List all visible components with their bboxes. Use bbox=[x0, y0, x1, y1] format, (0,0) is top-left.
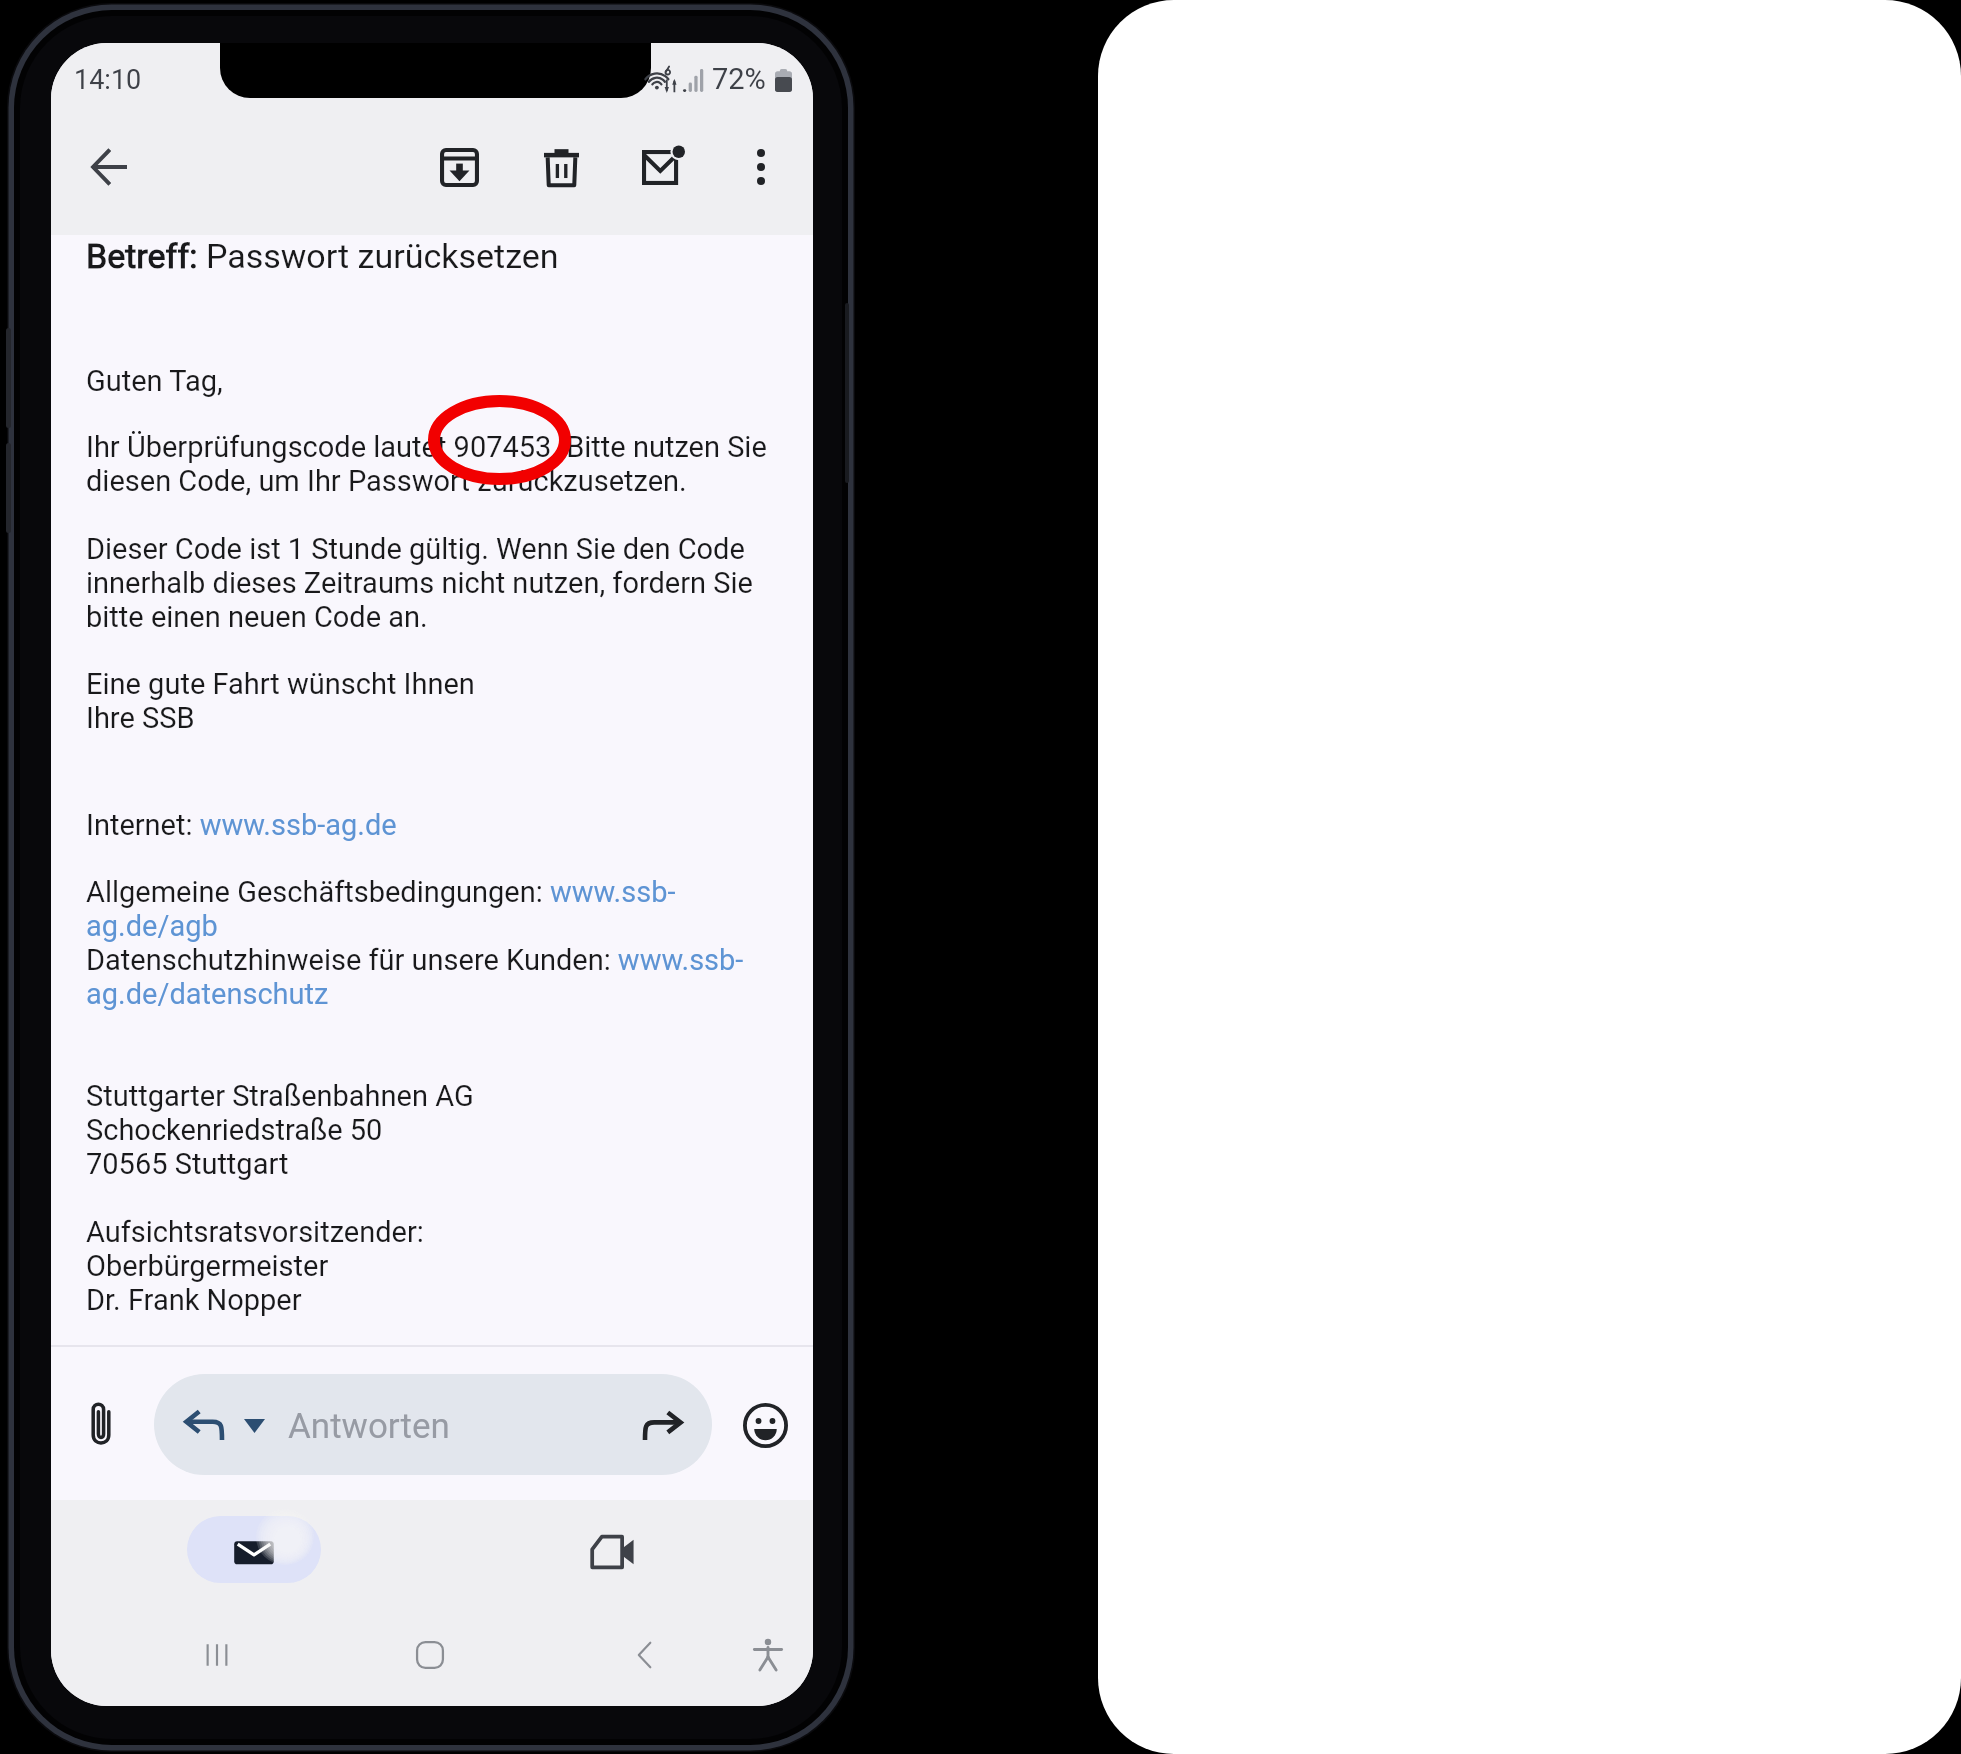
button[interactable]: Home bbox=[398, 1623, 462, 1687]
button[interactable]: Recent apps bbox=[185, 1623, 249, 1687]
staticText: Aufsichtsratsvorsitzender: Oberbürgermei… bbox=[86, 1215, 424, 1317]
button[interactable]: Mark as unread bbox=[628, 132, 698, 202]
button[interactable]: Delete bbox=[526, 132, 596, 202]
button[interactable]: Insert emoji bbox=[734, 1394, 796, 1456]
button[interactable]: Accessibility bbox=[736, 1623, 800, 1687]
staticText: Antworten bbox=[288, 1406, 450, 1447]
button[interactable]: Back bbox=[614, 1623, 678, 1687]
staticText: Dieser Code ist 1 Stunde gültig. Wenn Si… bbox=[86, 532, 753, 634]
staticText: 14:10 bbox=[74, 64, 142, 96]
staticText: Ihr Überprüfungscode lautet 907453. Bitt… bbox=[86, 430, 767, 498]
staticText: Stuttgarter Straßenbahnen AG Schockenrie… bbox=[86, 1079, 474, 1181]
staticText: Betreff: Passwort zurücksetzen bbox=[86, 236, 559, 276]
button[interactable]: Attach file bbox=[70, 1393, 132, 1455]
staticText: Internet: www.ssb-ag.de bbox=[86, 808, 397, 842]
staticText: Eine gute Fahrt wünscht Ihnen Ihre SSB bbox=[86, 667, 475, 735]
staticText: Allgemeine Geschäftsbedingungen: www.ssb… bbox=[86, 875, 744, 1011]
button[interactable]: Antworten bbox=[154, 1374, 712, 1475]
button[interactable]: Archive bbox=[424, 132, 494, 202]
button[interactable]: Back bbox=[74, 132, 144, 202]
button[interactable]: More options bbox=[726, 132, 796, 202]
button[interactable]: Mail bbox=[187, 1516, 321, 1583]
staticText: 72% bbox=[712, 62, 766, 96]
button[interactable]: Video call bbox=[580, 1520, 644, 1584]
staticText: Guten Tag, bbox=[86, 364, 223, 398]
